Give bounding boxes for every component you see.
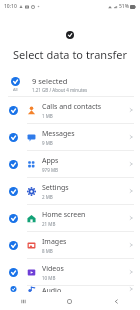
other: Open Settings — [128, 188, 134, 194]
other: Open Apps — [128, 161, 134, 167]
button[interactable]: Recents — [0, 292, 46, 310]
staticText: 51% — [119, 3, 129, 10]
button[interactable]: Home screen — [0, 205, 140, 231]
button[interactable]: Home — [46, 292, 93, 310]
button[interactable]: All — [0, 72, 140, 96]
button[interactable]: Messages — [0, 124, 140, 150]
staticText: 9 selected — [32, 76, 68, 86]
staticText: Videos — [42, 264, 64, 274]
other: Open Images — [128, 242, 134, 248]
button[interactable]: Videos — [0, 259, 140, 285]
staticText: 10:10 — [4, 3, 17, 10]
button[interactable]: Calls and contacts — [0, 97, 140, 123]
other: Open Home screen — [128, 215, 134, 221]
staticText: 8 MB — [42, 248, 53, 254]
staticText: 2 MB — [42, 194, 53, 200]
button[interactable]: Apps — [0, 151, 140, 177]
staticText: Settings — [42, 183, 69, 193]
staticText: 1 MB — [42, 113, 53, 119]
staticText: Images — [42, 237, 67, 247]
staticText: 1.21 GB / About 4 minutes — [32, 87, 88, 93]
other: Open Videos — [128, 269, 134, 275]
button[interactable]: Images — [0, 232, 140, 258]
staticText: 9 MB — [42, 140, 53, 146]
staticText: Audio — [42, 286, 62, 292]
staticText: All — [13, 87, 18, 92]
staticText: 979 MB — [42, 167, 58, 173]
staticText: Home screen — [42, 210, 86, 220]
button[interactable]: Settings — [0, 178, 140, 204]
other: Open Messages — [128, 134, 134, 140]
button[interactable]: Audio — [0, 286, 140, 292]
other: Open Calls and contacts — [128, 107, 134, 113]
staticText: Messages — [42, 129, 75, 139]
staticText: Apps — [42, 156, 59, 166]
button[interactable]: Back — [93, 292, 140, 310]
staticText: Calls and contacts — [42, 102, 102, 112]
other: Open Audio — [128, 286, 134, 292]
staticText: Select data to transfer — [13, 47, 127, 62]
staticText: 10 MB — [42, 275, 56, 281]
staticText: 21 MB — [42, 221, 56, 227]
